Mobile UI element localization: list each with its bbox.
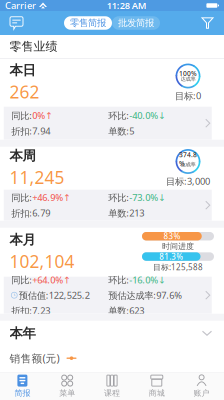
staticText: 本月: [9, 231, 35, 248]
staticText: 11,245: [9, 166, 64, 189]
staticText: 预估达成率:97.6%: [108, 289, 182, 301]
staticText: 81.3%: [159, 251, 183, 262]
staticText: 11:28 AM: [107, 0, 147, 12]
staticText: 同比:: [11, 109, 32, 122]
staticText: 本日: [9, 62, 35, 78]
staticText: 目标:3,000: [166, 175, 210, 187]
staticText: 批发简报: [118, 17, 154, 29]
staticText: 100%: [179, 69, 197, 78]
staticText: 简报: [14, 388, 30, 398]
staticText: 374.8%: [179, 150, 197, 168]
button[interactable]: 简报: [0, 372, 45, 400]
staticText: 商城: [149, 388, 165, 398]
staticText: 同比:: [11, 274, 32, 286]
staticText: 达成率: [180, 161, 195, 168]
button[interactable]: 本年: [0, 321, 224, 346]
staticText: 本周: [9, 147, 35, 164]
staticText: -73.0%↓: [129, 191, 166, 204]
staticText: 达成率: [180, 76, 195, 82]
staticText: 零售业绩: [9, 39, 57, 54]
staticText: 0%↑: [32, 109, 53, 122]
staticText: 目标:0: [175, 89, 201, 102]
button[interactable]: 批发简报: [112, 16, 160, 30]
staticText: 菜单: [59, 388, 75, 398]
staticText: 环比:: [108, 274, 129, 286]
staticText: 单数:623: [108, 304, 144, 317]
staticText: 零售简报: [70, 17, 106, 29]
staticText: -16.0%↓: [129, 274, 166, 286]
staticText: 同比:: [11, 191, 32, 204]
staticText: 折扣:7.94: [11, 125, 50, 137]
staticText: 环比:: [108, 191, 129, 204]
staticText: 本年: [9, 325, 35, 341]
staticText: 单数:5: [108, 125, 134, 137]
staticText: 折扣:7.23: [11, 304, 50, 317]
staticText: 262: [9, 80, 39, 103]
staticText: 单数:213: [108, 207, 144, 219]
staticText: +46.9%↑: [32, 191, 71, 204]
staticText: 账户: [194, 388, 210, 398]
staticText: 目标:125,588: [153, 262, 203, 272]
staticText: -40.0%↓: [129, 109, 166, 122]
staticText: 时间进度: [162, 241, 194, 251]
staticText: 销售额(元): [9, 351, 59, 365]
staticText: 课程: [104, 388, 120, 398]
staticText: 83%: [163, 231, 180, 241]
staticText: Carrier: [5, 0, 36, 12]
button[interactable]: 课程: [90, 372, 134, 400]
staticText: 环比:: [108, 109, 129, 122]
staticText: +64.0%↑: [32, 274, 71, 286]
staticText: 预估值:122,525.2: [19, 289, 90, 301]
button[interactable]: 菜单: [45, 372, 90, 400]
button[interactable]: 账户: [179, 372, 224, 400]
button[interactable]: 零售简报: [64, 16, 112, 30]
staticText: 折扣:6.79: [11, 207, 50, 219]
button[interactable]: Filter: [191, 11, 224, 35]
staticText: 102,104: [9, 250, 74, 273]
button[interactable]: Messages: [0, 11, 33, 35]
button[interactable]: 商城: [134, 372, 179, 400]
